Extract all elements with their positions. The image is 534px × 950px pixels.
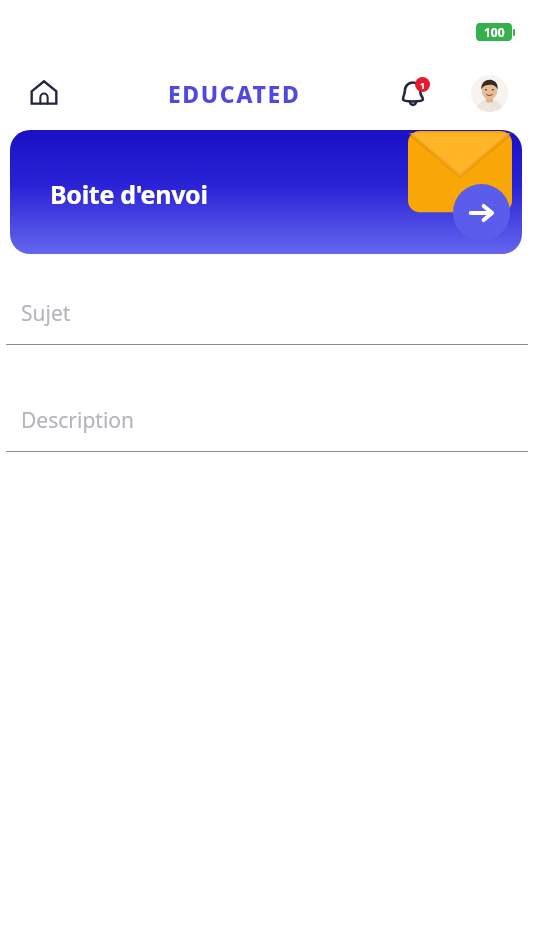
button[interactable]: Description: [0, 389, 534, 451]
button[interactable]: Sujet: [0, 282, 534, 344]
staticText: Description: [21, 406, 135, 435]
button[interactable]: Home: [22, 71, 66, 115]
button[interactable]: Boite d'envoi: [10, 130, 522, 254]
staticText: Sujet: [21, 299, 71, 328]
button[interactable]: Notifications: [391, 71, 435, 115]
button[interactable]: EDUCATED: [168, 78, 301, 109]
staticText: Boite d'envoi: [50, 177, 208, 211]
staticText: 1: [420, 79, 426, 91]
staticText: EDUCATED: [168, 78, 301, 109]
button[interactable]: Open outbox: [453, 184, 510, 241]
button[interactable]: Profile: [471, 75, 508, 112]
staticText: 100: [484, 24, 505, 40]
